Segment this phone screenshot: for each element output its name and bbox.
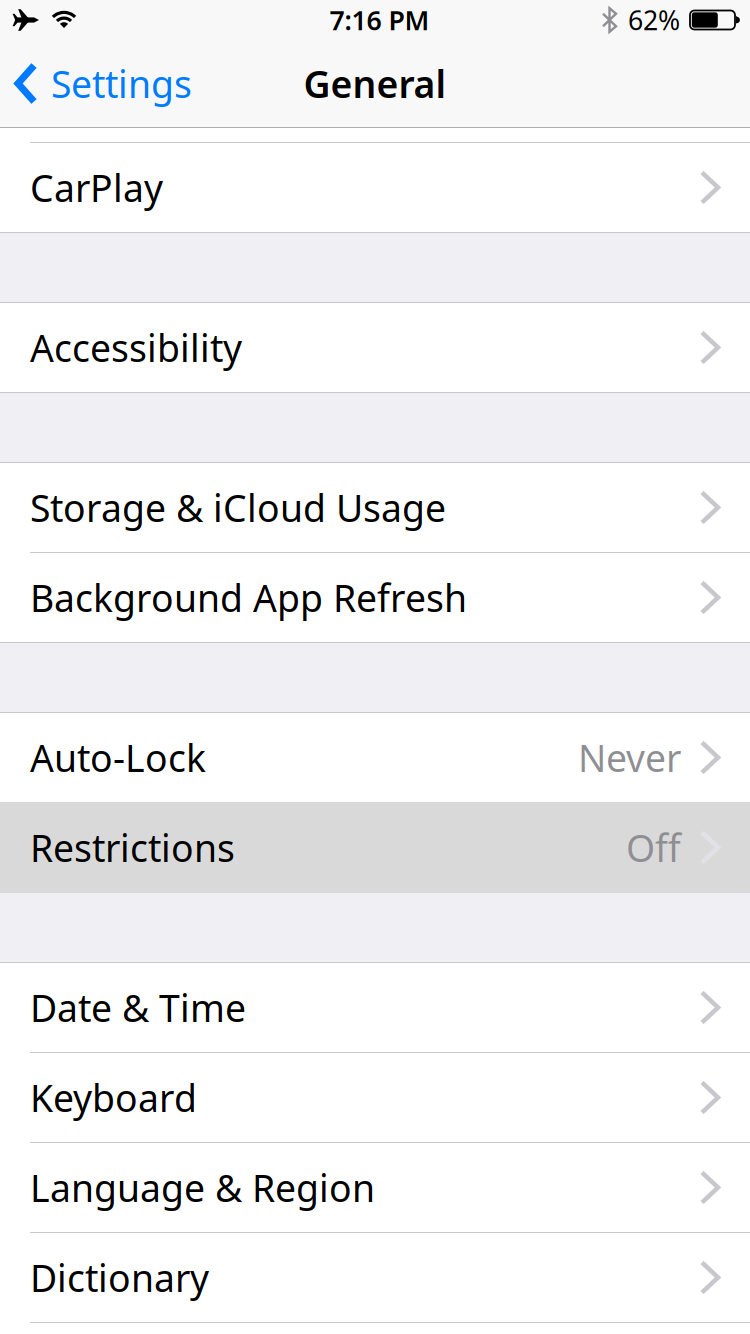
button[interactable]: Date & Time (0, 963, 750, 1052)
button[interactable]: Keyboard (0, 1053, 750, 1142)
staticText: CarPlay (30, 163, 163, 212)
button[interactable]: Background App Refresh (0, 553, 750, 642)
staticText: Date & Time (30, 983, 246, 1032)
staticText: Auto-Lock (30, 733, 206, 782)
staticText: Restrictions (30, 823, 235, 872)
button[interactable]: Dictionary (0, 1233, 750, 1322)
staticText: Storage & iCloud Usage (30, 483, 446, 532)
button[interactable]: Accessibility (0, 303, 750, 392)
staticText: Dictionary (30, 1253, 209, 1302)
button[interactable]: CarPlay (0, 143, 750, 232)
staticText: Background App Refresh (30, 573, 467, 622)
staticText: General (303, 59, 446, 108)
staticText: Keyboard (30, 1073, 197, 1122)
button[interactable]: Storage & iCloud Usage (0, 463, 750, 552)
button[interactable]: Restrictions (0, 802, 750, 893)
staticText: 62% (628, 2, 680, 38)
button[interactable]: Language & Region (0, 1143, 750, 1232)
button[interactable]: Auto-Lock (0, 713, 750, 802)
staticText: Accessibility (30, 323, 242, 372)
staticText: Off (626, 823, 681, 872)
staticText: Language & Region (30, 1163, 375, 1212)
button[interactable]: Back to Settings (0, 59, 192, 108)
staticText: Never (578, 733, 681, 782)
staticText: 7:16 PM (329, 2, 429, 38)
staticText: Settings (51, 59, 192, 108)
